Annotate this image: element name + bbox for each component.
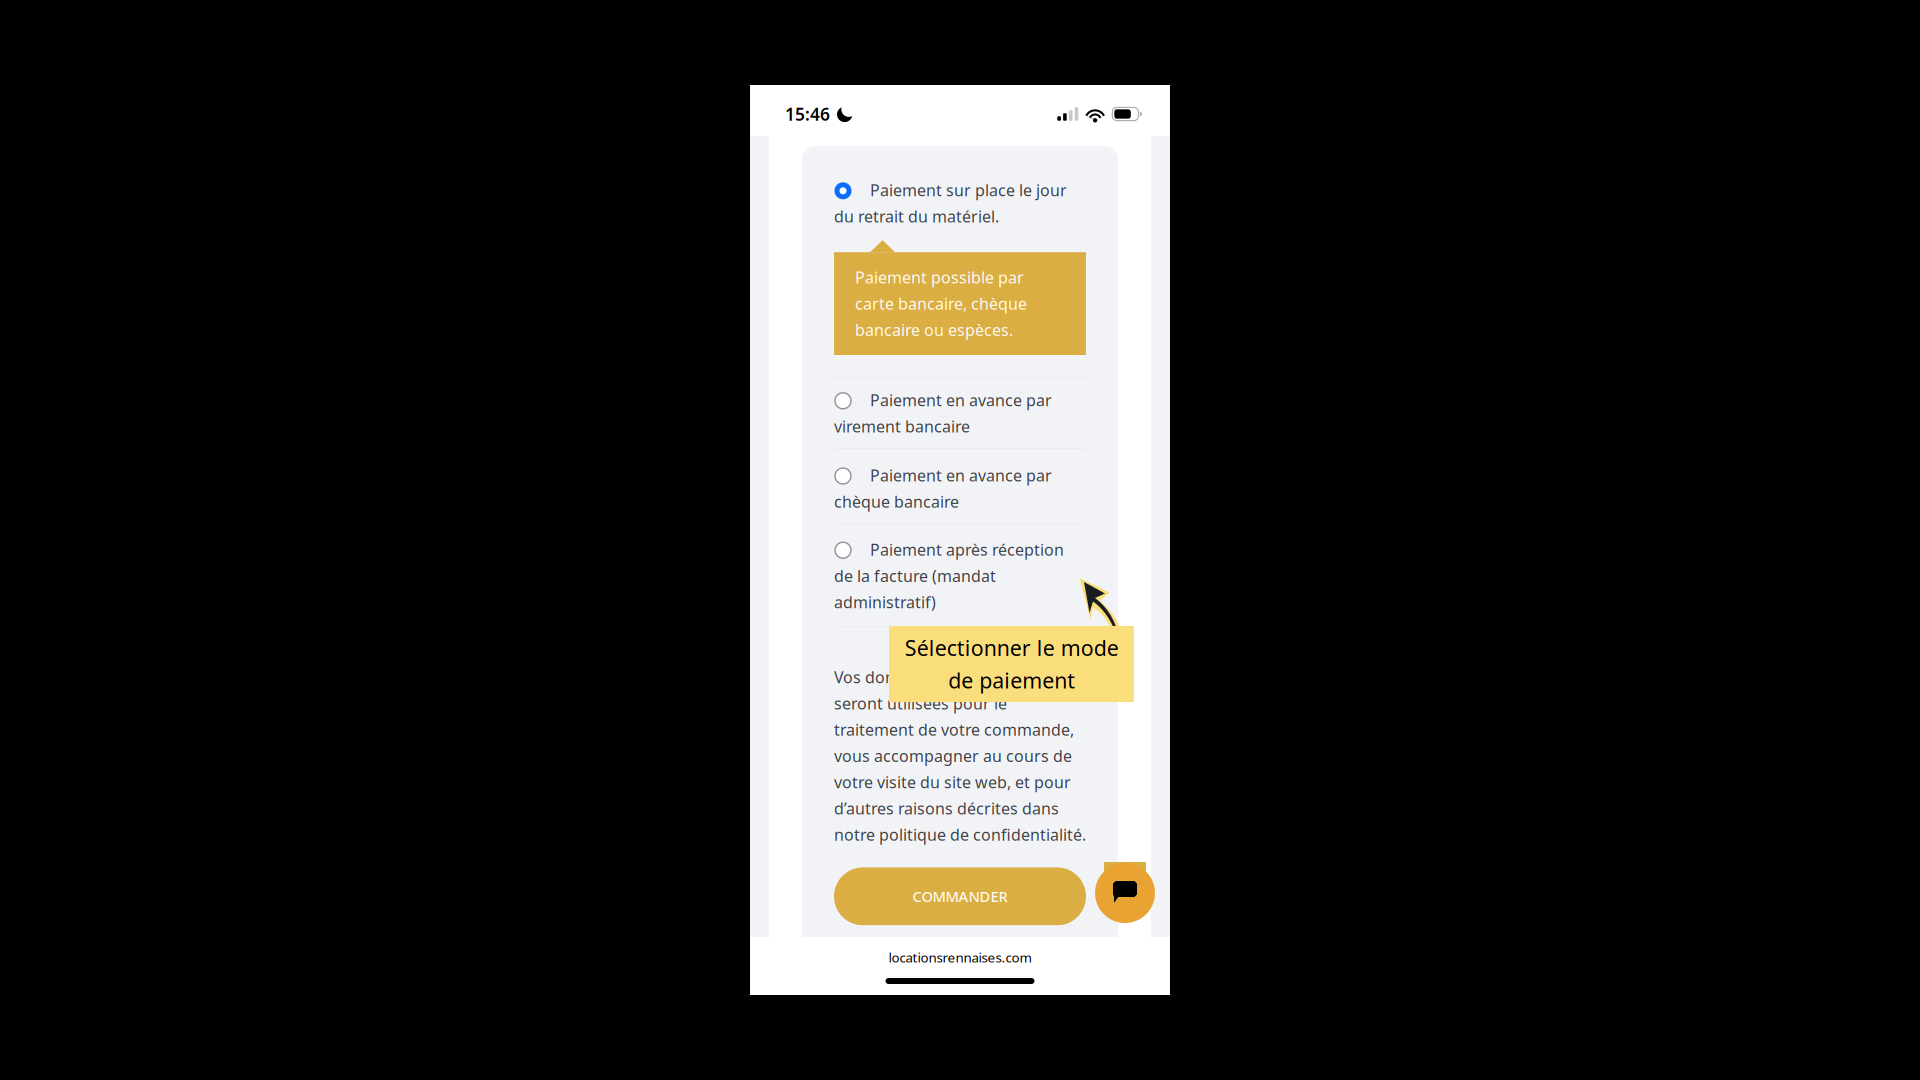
staticText: Paiement sur place le jour du retrait du… (834, 179, 1067, 227)
button[interactable]: Paiement sur place le jour du retrait du… (834, 178, 1086, 229)
staticText: Sélectionner le mode de paiement (904, 634, 1118, 694)
staticText: Paiement possible par carte bancaire, ch… (855, 267, 1027, 340)
button[interactable]: Paiement en avance par chèque bancaire (834, 463, 1086, 514)
staticText: locationsrennaises.com (888, 948, 1031, 966)
staticText: Paiement en avance par virement bancaire (834, 389, 1052, 437)
staticText: Paiement après réception de la facture (… (834, 539, 1064, 613)
staticText: Paiement en avance par chèque bancaire (834, 465, 1052, 512)
button[interactable]: Paiement après réception de la facture (… (834, 537, 1086, 614)
staticText: COMMANDER (912, 887, 1007, 906)
button[interactable]: Paiement en avance par virement bancaire (834, 388, 1086, 439)
staticText: 15:46 (785, 102, 830, 125)
button[interactable]: Ouvrir le chat (1095, 862, 1155, 923)
button[interactable]: COMMANDER (834, 867, 1086, 925)
staticText: Vos données personnelles seront utilisée… (834, 666, 1086, 845)
